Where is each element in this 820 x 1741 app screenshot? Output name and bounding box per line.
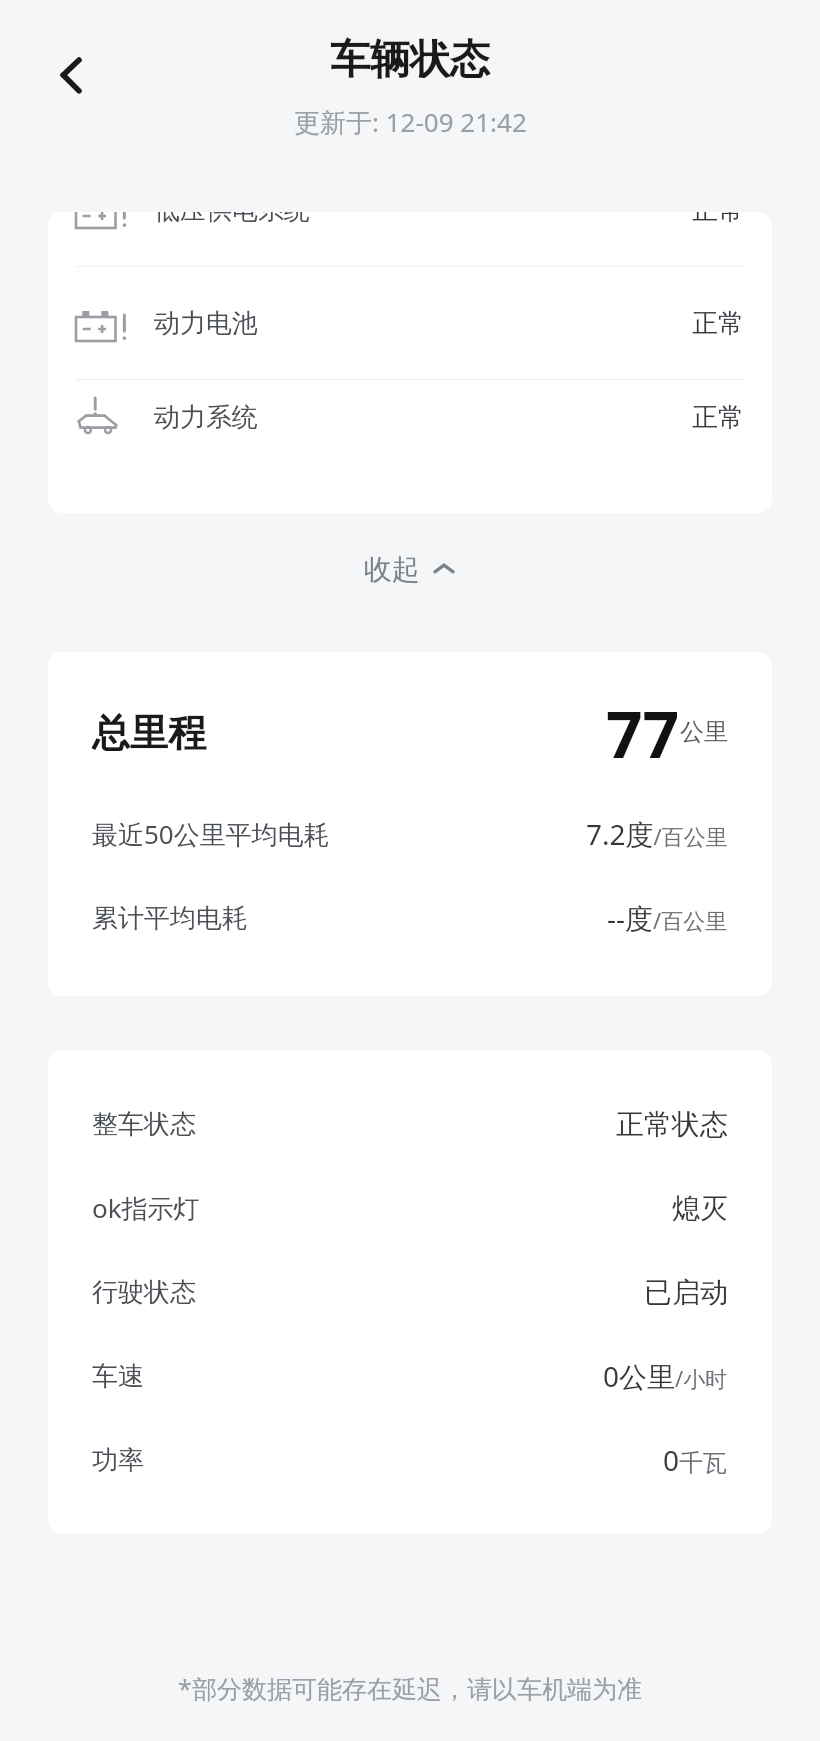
- staticText: --度/百公里: [607, 899, 728, 937]
- staticText: 7.2度/百公里: [586, 815, 728, 853]
- staticText: 0公里/小时: [603, 1357, 728, 1395]
- staticText: 整车状态: [92, 1108, 196, 1141]
- button[interactable]: 动力电池: [48, 267, 772, 379]
- staticText: 收起: [364, 552, 420, 587]
- staticText: 正常: [692, 307, 744, 340]
- staticText: 车速: [92, 1360, 144, 1393]
- staticText: 行驶状态: [92, 1276, 196, 1309]
- staticText: 动力电池: [154, 307, 258, 340]
- staticText: 0千瓦: [663, 1441, 728, 1479]
- staticText: 总里程: [92, 709, 206, 757]
- staticText: 公里: [680, 717, 728, 747]
- button[interactable]: 累计平均电耗: [48, 876, 772, 960]
- button[interactable]: 最近50公里平均电耗: [48, 792, 772, 876]
- staticText: 正常状态: [616, 1107, 728, 1142]
- button[interactable]: 低压供电系统: [48, 212, 772, 266]
- staticText: 最近50公里平均电耗: [92, 816, 330, 852]
- button[interactable]: 总里程: [48, 674, 772, 792]
- staticText: 正常: [692, 212, 744, 227]
- staticText: 77: [606, 690, 680, 777]
- button[interactable]: 功率: [48, 1418, 772, 1502]
- staticText: 功率: [92, 1444, 144, 1477]
- staticText: 车辆状态: [330, 34, 490, 84]
- button[interactable]: ok指示灯: [48, 1166, 772, 1250]
- button[interactable]: 收起: [0, 513, 820, 625]
- button[interactable]: 行驶状态: [48, 1250, 772, 1334]
- staticText: 已启动: [644, 1275, 728, 1310]
- staticText: 低压供电系统: [154, 212, 310, 227]
- staticText: ok指示灯: [92, 1190, 200, 1226]
- button[interactable]: Back: [36, 39, 108, 111]
- staticText: 更新于: 12-09 21:42: [294, 104, 527, 140]
- staticText: 正常: [692, 401, 744, 434]
- staticText: *部分数据可能存在延迟，请以车机端为准: [0, 1671, 820, 1705]
- button[interactable]: 车速: [48, 1334, 772, 1418]
- staticText: 熄灭: [672, 1191, 728, 1226]
- button[interactable]: 动力系统: [48, 380, 772, 455]
- staticText: 累计平均电耗: [92, 902, 248, 935]
- button[interactable]: 整车状态: [48, 1082, 772, 1166]
- staticText: 动力系统: [154, 401, 258, 434]
